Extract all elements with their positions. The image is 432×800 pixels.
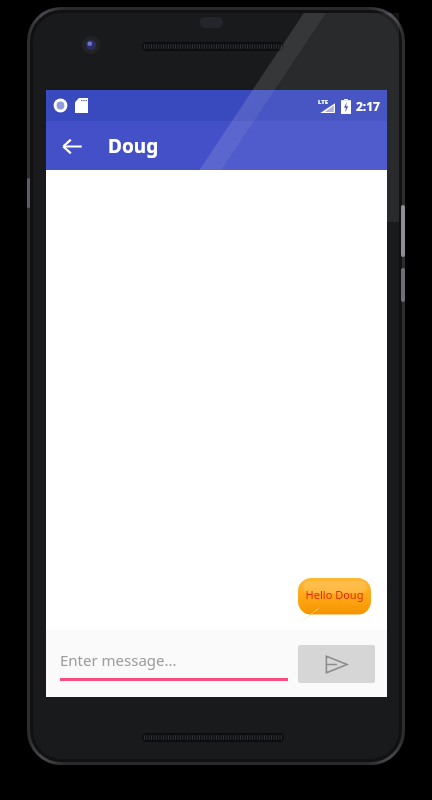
staticText: LTE xyxy=(318,98,329,106)
button[interactable]: Enter message... xyxy=(60,643,288,685)
staticText: Doug xyxy=(108,133,159,159)
button[interactable]: Send xyxy=(298,645,375,683)
staticText: 2:17 xyxy=(356,98,380,114)
staticText: Hello Doug xyxy=(298,587,371,602)
button[interactable]: Back xyxy=(52,126,92,166)
staticText: Enter message... xyxy=(60,650,177,670)
